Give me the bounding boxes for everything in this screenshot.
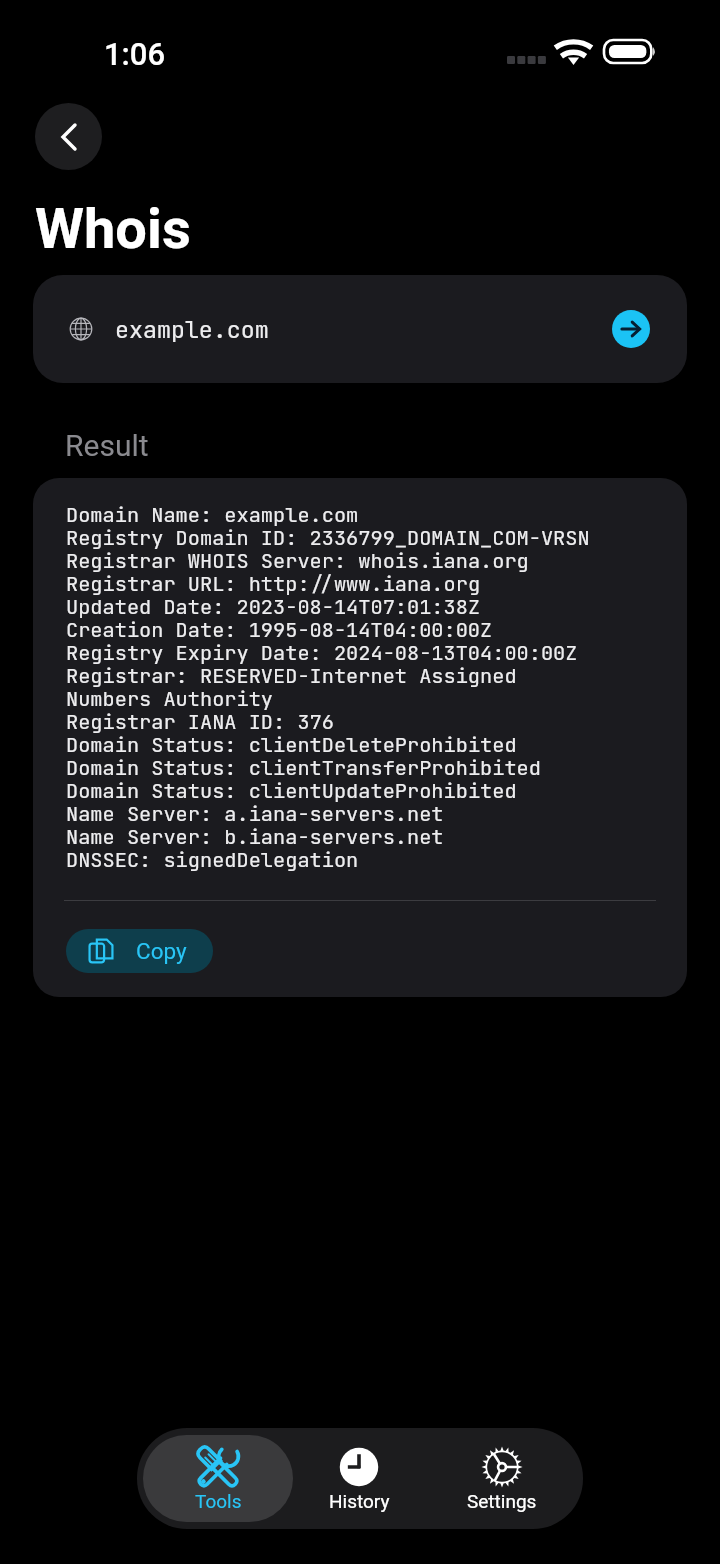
button[interactable]: example.com	[33, 275, 687, 383]
staticText: Whois	[35, 196, 191, 262]
staticText: Tools	[195, 1490, 242, 1512]
staticText: example.com	[115, 314, 269, 345]
button[interactable]: Settings	[427, 1435, 577, 1522]
staticText: Settings	[467, 1490, 537, 1512]
staticText: Domain Name: example.com Registry Domain…	[66, 501, 590, 873]
staticText: 1:06	[104, 36, 166, 72]
button[interactable]: History	[284, 1435, 434, 1522]
button[interactable]: Back	[35, 103, 102, 170]
staticText: Copy	[136, 938, 187, 964]
button[interactable]: Copy	[66, 929, 213, 973]
staticText: History	[329, 1490, 390, 1512]
button[interactable]: Tools	[143, 1435, 293, 1522]
staticText: Result	[65, 428, 149, 463]
button[interactable]: Search	[612, 310, 650, 348]
